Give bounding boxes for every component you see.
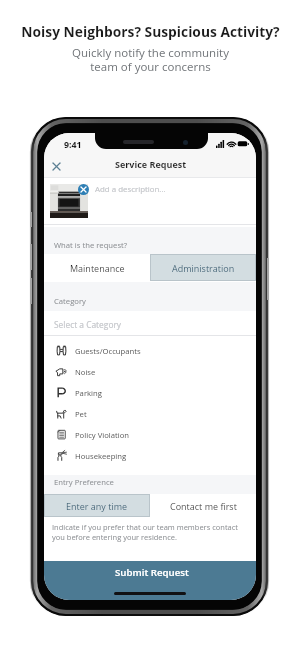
button[interactable]: Remove photo bbox=[78, 184, 89, 195]
button[interactable]: Policy Violation bbox=[44, 424, 256, 445]
staticText: Indicate if you prefer that our team mem… bbox=[52, 522, 238, 543]
staticText: What is the request? bbox=[54, 240, 128, 250]
button[interactable]: Guests/Occupants bbox=[44, 340, 256, 361]
button[interactable]: Noise bbox=[44, 361, 256, 382]
staticText: Add a description... bbox=[95, 184, 166, 195]
staticText: Entry Preference bbox=[54, 477, 114, 487]
staticText: Quickly notify the community team of you… bbox=[72, 45, 229, 74]
button[interactable]: Pet bbox=[44, 403, 256, 424]
staticText: Pet bbox=[75, 409, 87, 419]
staticText: Parking bbox=[75, 388, 102, 398]
staticText: Noise bbox=[75, 367, 96, 377]
button[interactable]: Maintenance bbox=[44, 254, 150, 281]
staticText: Enter any time bbox=[66, 500, 128, 512]
button[interactable]: Administration bbox=[150, 254, 256, 281]
staticText: 9:41 bbox=[64, 139, 82, 151]
button[interactable]: Submit Request bbox=[44, 561, 256, 600]
staticText: Submit Request bbox=[115, 566, 189, 579]
staticText: Guests/Occupants bbox=[75, 346, 141, 356]
staticText: Category bbox=[54, 296, 86, 306]
button[interactable]: Enter any time bbox=[44, 494, 150, 517]
staticText: Administration bbox=[172, 262, 235, 274]
staticText: Noisy Neighbors? Suspicious Activity? bbox=[21, 22, 280, 41]
staticText: Policy Violation bbox=[75, 430, 130, 440]
button[interactable]: Contact me first bbox=[150, 494, 256, 517]
staticText: Select a Category bbox=[54, 319, 122, 330]
staticText: Maintenance bbox=[70, 262, 125, 274]
button[interactable]: Housekeeping bbox=[44, 445, 256, 466]
staticText: Service Request bbox=[115, 158, 187, 170]
staticText: Contact me first bbox=[170, 500, 237, 512]
staticText: Housekeeping bbox=[75, 451, 127, 461]
button[interactable]: Close bbox=[47, 157, 66, 176]
button[interactable]: Parking bbox=[44, 382, 256, 403]
